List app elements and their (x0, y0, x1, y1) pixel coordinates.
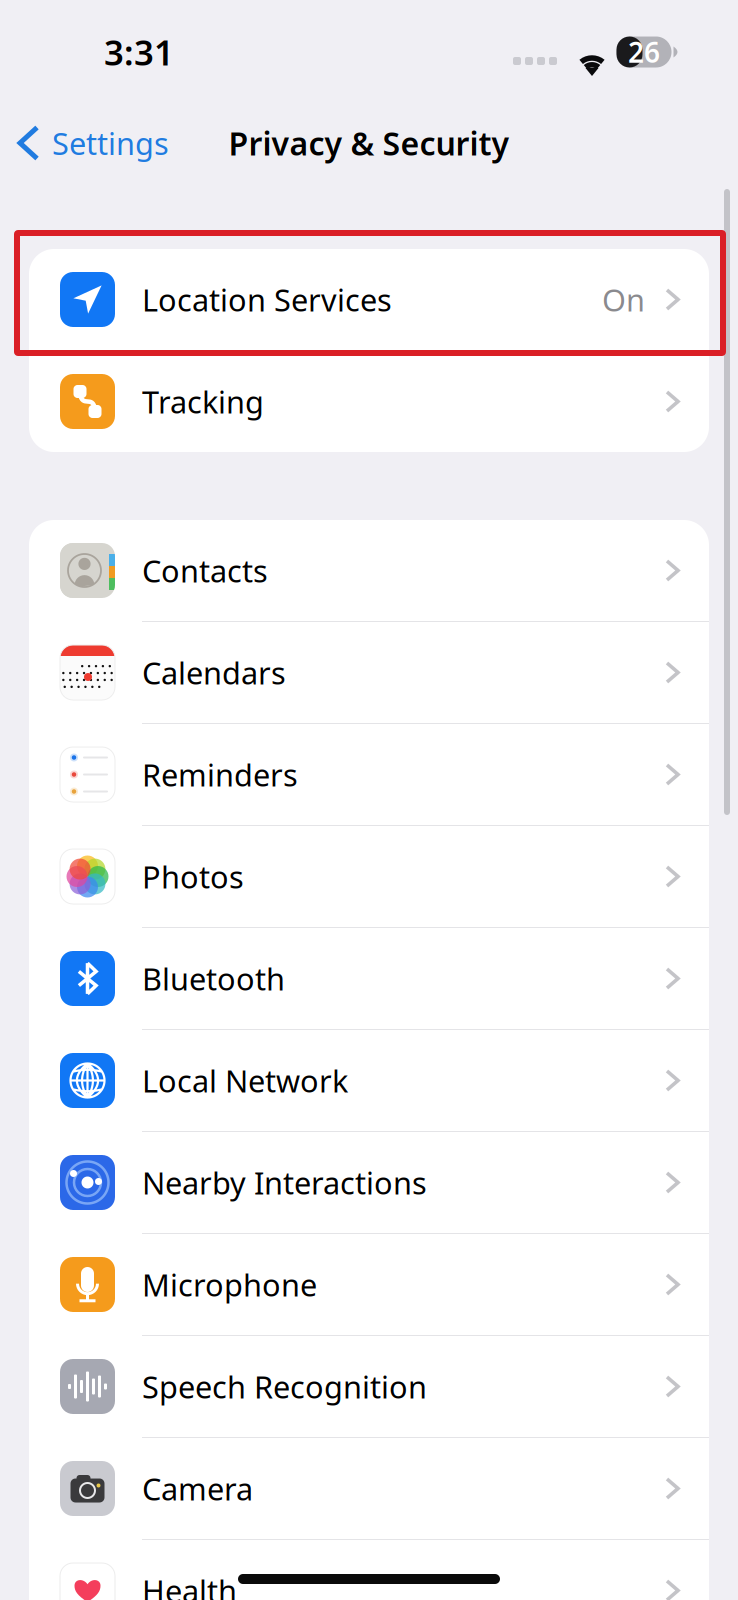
button[interactable]: Speech Recognition (29, 1336, 709, 1438)
staticText: 26 (628, 33, 660, 71)
staticText: Reminders (142, 754, 298, 795)
button[interactable]: Reminders (29, 724, 709, 826)
staticText: Calendars (142, 652, 286, 693)
button[interactable]: Microphone (29, 1234, 709, 1336)
button[interactable]: Camera (29, 1438, 709, 1540)
button[interactable]: Tracking (29, 351, 709, 452)
staticText: Camera (142, 1468, 253, 1509)
staticText: Nearby Interactions (142, 1162, 427, 1203)
button[interactable]: Bluetooth (29, 928, 709, 1030)
button[interactable]: Location Services (29, 249, 709, 351)
staticText: Photos (142, 856, 244, 897)
staticText: Tracking (142, 381, 264, 422)
button[interactable]: Calendars (29, 622, 709, 724)
staticText: Microphone (142, 1264, 317, 1305)
staticText: Settings (52, 123, 169, 163)
button[interactable]: Nearby Interactions (29, 1132, 709, 1234)
staticText: Local Network (142, 1060, 348, 1101)
button[interactable]: Local Network (29, 1030, 709, 1132)
button[interactable]: Health (29, 1540, 709, 1600)
staticText: Bluetooth (142, 958, 285, 999)
staticText: Location Services (142, 279, 392, 320)
staticText: Privacy & Security (228, 122, 509, 164)
staticText: Health (142, 1570, 237, 1600)
staticText: Speech Recognition (142, 1366, 427, 1407)
staticText: 3:31 (104, 29, 174, 75)
staticText: On (602, 279, 645, 320)
staticText: Contacts (142, 550, 268, 591)
button[interactable]: Settings (0, 109, 179, 177)
button[interactable]: Contacts (29, 520, 709, 622)
button[interactable]: Photos (29, 826, 709, 928)
